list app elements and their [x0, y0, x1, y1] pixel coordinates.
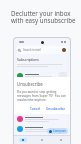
staticText: Unsubscribe: [17, 81, 43, 87]
button[interactable]: Compose: [47, 128, 68, 134]
staticText: Search in mail: [23, 48, 41, 52]
button[interactable]: Tab: [51, 136, 70, 144]
staticText: Subscriptions: [17, 57, 39, 62]
staticText: Unsubscribe: [46, 107, 66, 111]
button[interactable]: Tab: [14, 136, 32, 144]
staticText: Declutter your inbox with easy unsubscri…: [11, 9, 76, 25]
button[interactable]: Unsubscribe: [44, 106, 68, 112]
button[interactable]: [14, 124, 70, 134]
button[interactable]: Tab: [32, 136, 51, 144]
other: Search: [18, 49, 21, 52]
staticText: Compose: [53, 129, 66, 133]
button[interactable]: [14, 70, 70, 82]
button[interactable]: Cancel: [28, 106, 43, 112]
staticText: Do you want to stop getting messages fro…: [17, 90, 66, 102]
button[interactable]: [14, 114, 70, 124]
button[interactable]: Search: [16, 46, 68, 54]
staticText: Cancel: [30, 107, 41, 111]
